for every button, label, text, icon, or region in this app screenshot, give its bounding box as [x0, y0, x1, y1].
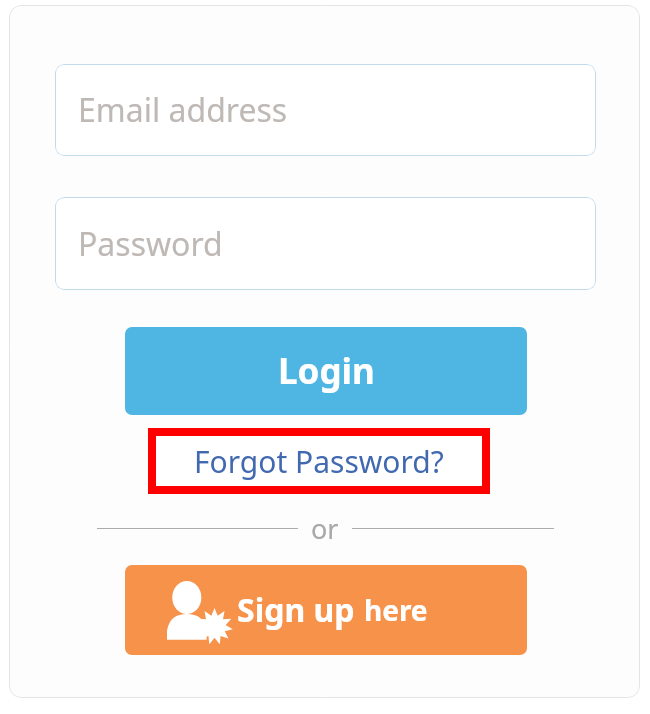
- staticText: here: [364, 591, 428, 629]
- button[interactable]: Login: [125, 327, 527, 415]
- button[interactable]: Sign up: [125, 565, 527, 655]
- staticText: Sign up: [237, 588, 355, 632]
- staticText: Password: [78, 222, 223, 266]
- staticText: Login: [278, 347, 375, 395]
- staticText: Forgot Password?: [194, 441, 444, 482]
- staticText: or: [311, 510, 339, 547]
- button[interactable]: Password: [55, 197, 596, 290]
- button[interactable]: Forgot Password?: [156, 436, 482, 486]
- other: Sign up: [167, 579, 233, 645]
- staticText: Email address: [78, 88, 288, 132]
- button[interactable]: Email address: [55, 64, 596, 156]
